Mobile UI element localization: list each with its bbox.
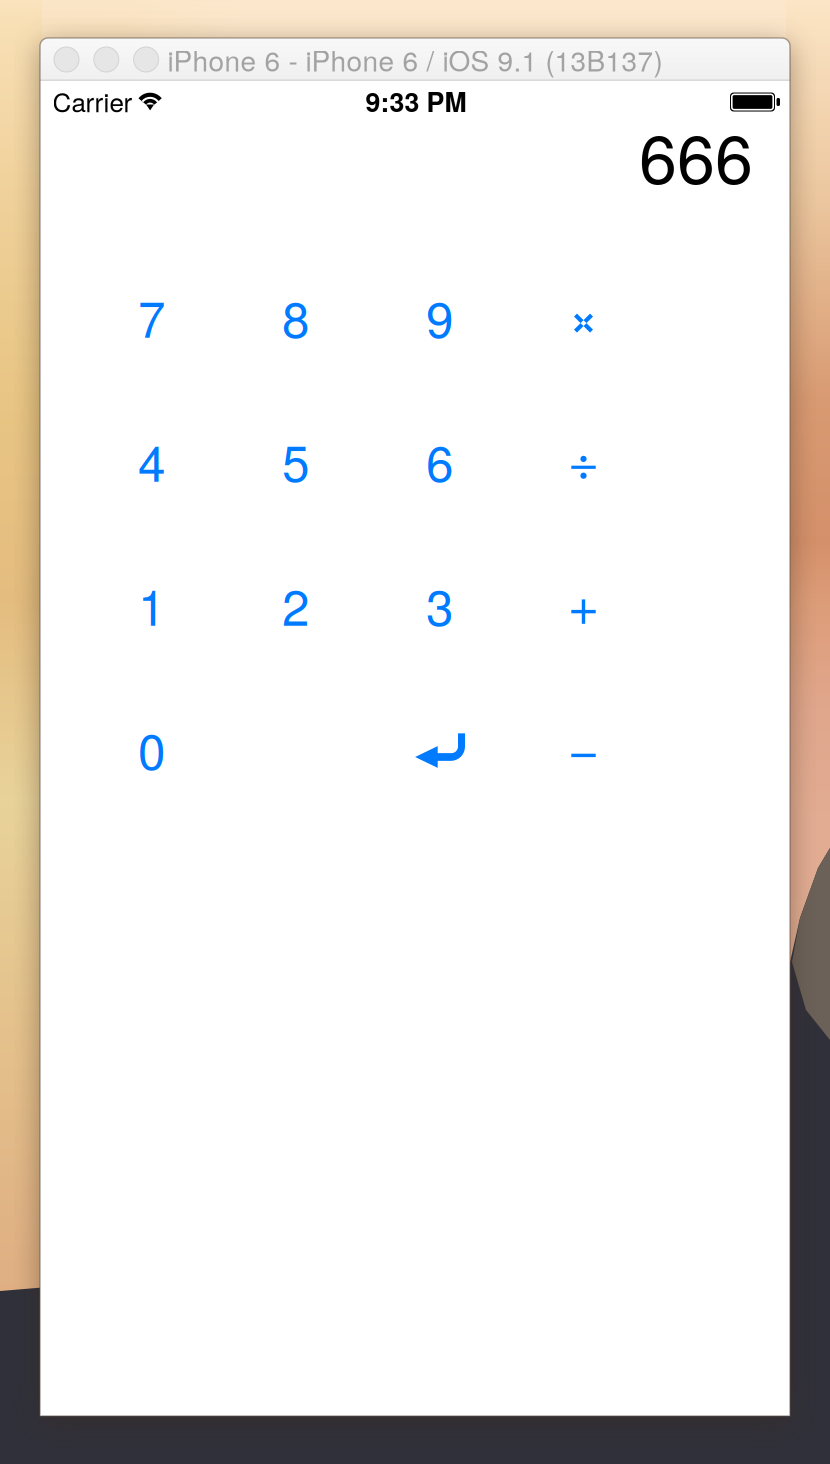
button[interactable]: 1 <box>79 536 223 680</box>
staticText: 1 <box>138 569 165 640</box>
button[interactable]: 7 <box>79 248 223 392</box>
staticText: 2 <box>282 569 309 640</box>
button[interactable]: Multiply <box>511 248 655 392</box>
staticText: 9 <box>426 281 453 352</box>
button[interactable]: Divide <box>511 392 655 536</box>
staticText: Carrier <box>52 82 132 120</box>
staticText: iPhone 6 - iPhone 6 / iOS 9.1 (13B137) <box>167 39 662 80</box>
staticText: 5 <box>282 425 309 496</box>
staticText: 4 <box>138 425 165 496</box>
button[interactable]: 6 <box>367 392 511 536</box>
button[interactable]: 5 <box>223 392 367 536</box>
button[interactable]: 3 <box>367 536 511 680</box>
button[interactable]: 0 <box>79 680 223 824</box>
staticText: 8 <box>282 281 309 352</box>
staticText: 9:33 PM <box>365 82 466 120</box>
button[interactable]: Add <box>511 536 655 680</box>
button[interactable]: Subtract <box>511 680 655 824</box>
staticText: 3 <box>426 569 453 640</box>
staticText: 6 <box>426 425 453 496</box>
button[interactable]: 2 <box>223 536 367 680</box>
button[interactable]: 9 <box>367 248 511 392</box>
staticText: 7 <box>138 281 165 352</box>
staticText: 0 <box>138 713 165 784</box>
button[interactable]: 4 <box>79 392 223 536</box>
button[interactable]: 8 <box>223 248 367 392</box>
button[interactable]: Enter <box>367 680 511 824</box>
staticText: 666 <box>639 106 753 203</box>
